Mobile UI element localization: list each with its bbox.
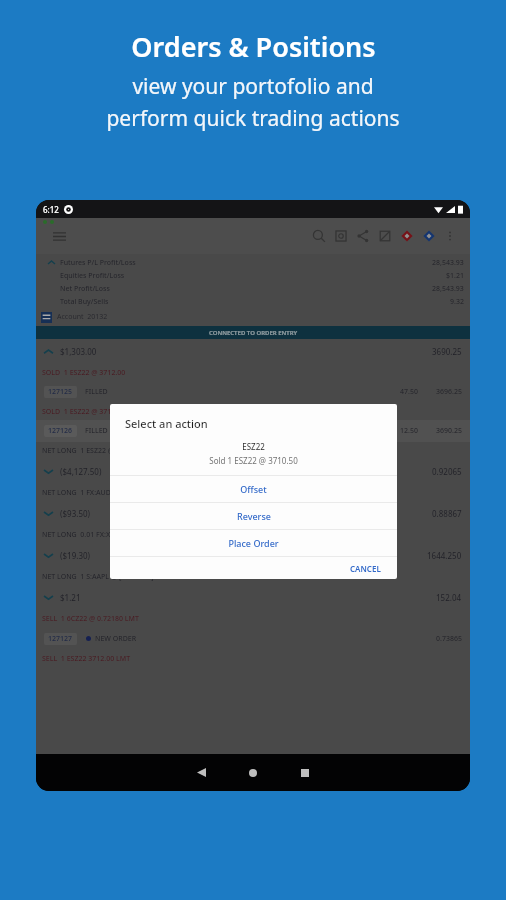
button[interactable]: NET LONG 1 ESZ22 @ [3698.2500]: [36, 442, 470, 459]
staticText: ($93.50): [60, 508, 91, 519]
button[interactable]: NET LONG 0.01 FX:XAUUSD.MO @ [1663.6700]: [36, 526, 470, 543]
staticText: CANCEL: [350, 563, 381, 573]
staticText: SELL 1 6CZ22 @ 0.72180 LMT: [42, 614, 139, 624]
staticText: 0.88867: [432, 508, 462, 519]
staticText: ($19.30): [60, 550, 91, 561]
staticText: 127126: [48, 426, 73, 436]
button[interactable]: NET LONG 1 S:AAPL @ [150.8300]: [36, 568, 470, 585]
button[interactable]: Share: [352, 225, 374, 247]
staticText: 1644.250: [427, 550, 462, 561]
staticText: 152.04: [436, 592, 462, 603]
staticText: 3696.25: [436, 387, 462, 397]
staticText: 6:12: [43, 204, 59, 215]
staticText: perform quick trading actions: [106, 104, 400, 133]
staticText: ($4,127.50): [60, 466, 102, 477]
staticText: SOLD 1 ESZ22 @ 3712.00: [42, 368, 126, 378]
button[interactable]: ($93.50): [36, 501, 470, 526]
staticText: Select an action: [125, 416, 208, 431]
staticText: 3690.25: [436, 426, 462, 436]
staticText: Equities Profit/Loss: [60, 271, 125, 281]
staticText: 47.50: [400, 387, 418, 397]
staticText: $1.21: [60, 592, 81, 603]
button[interactable]: Place Order: [110, 530, 397, 556]
button[interactable]: Search: [308, 225, 330, 247]
button[interactable]: Menu: [46, 223, 72, 249]
button[interactable]: Snapshot: [330, 225, 352, 247]
staticText: SELL 1 ESZ22 3712.00 LMT: [42, 654, 131, 664]
staticText: Net Profit/Loss: [60, 284, 110, 294]
button[interactable]: Recents: [279, 754, 331, 791]
staticText: Futures P/L Profit/Loss: [60, 258, 136, 268]
button[interactable]: Home: [227, 754, 279, 791]
button[interactable]: SELL 1 ESZ22 3712.00 LMT: [36, 650, 470, 667]
button[interactable]: $1,303.00: [36, 339, 470, 364]
staticText: 127125: [48, 387, 73, 397]
button[interactable]: Buy: [418, 225, 440, 247]
staticText: FILLED: [85, 387, 108, 397]
staticText: 127127: [48, 634, 73, 644]
staticText: NET LONG 1 S:AAPL @ [150.8300]: [42, 572, 154, 582]
button[interactable]: SOLD 1 ESZ22 @ 3710.50: [36, 403, 470, 420]
button[interactable]: SELL 1 6CZ22 @ 0.72180 LMT: [36, 610, 470, 627]
staticText: 3690.25: [432, 346, 462, 357]
staticText: FILLED: [85, 426, 108, 436]
staticText: Place Order: [228, 537, 279, 549]
button[interactable]: Offset: [110, 476, 397, 502]
button[interactable]: Reverse: [110, 503, 397, 529]
staticText: ESZ22: [110, 441, 397, 452]
staticText: Offset: [240, 483, 267, 495]
button[interactable]: ($4,127.50): [36, 459, 470, 484]
button[interactable]: Sell: [396, 225, 418, 247]
staticText: CONNECTED TO ORDER ENTRY: [209, 329, 298, 337]
button[interactable]: CANCEL: [334, 557, 397, 579]
button[interactable]: Refresh: [374, 225, 396, 247]
staticText: NET LONG 0.01 FX:XAUUSD.MO @ [1663.6700]: [42, 530, 197, 540]
staticText: Total Buy/Sells: [60, 297, 109, 307]
staticText: 0.73865: [436, 634, 462, 644]
staticText: 0.92065: [432, 466, 462, 477]
staticText: SOLD 1 ESZ22 @ 3710.50: [42, 407, 126, 417]
staticText: 9.32: [450, 297, 464, 307]
button[interactable]: $1.21: [36, 585, 470, 610]
staticText: NET LONG 1 ESZ22 @ [3698.2500]: [42, 446, 155, 456]
staticText: 28,543.93: [432, 284, 464, 294]
staticText: NEW ORDER: [95, 634, 137, 644]
button[interactable]: 127127: [36, 627, 470, 650]
button[interactable]: SOLD 1 ESZ22 @ 3712.00: [36, 364, 470, 381]
staticText: Sold 1 ESZ22 @ 3710.50: [110, 455, 397, 466]
staticText: Account 20132: [57, 312, 108, 322]
staticText: Reverse: [237, 510, 271, 522]
staticText: NET LONG 1 FX:AUDUSD @ [0.8800]: [42, 488, 162, 498]
button[interactable]: 127126: [36, 420, 470, 442]
button[interactable]: Back: [175, 754, 227, 791]
button[interactable]: 127125: [36, 381, 470, 403]
staticText: $1,303.00: [60, 346, 97, 357]
button[interactable]: ($19.30): [36, 543, 470, 568]
staticText: view your portofolio and: [132, 72, 374, 101]
staticText: 12.50: [400, 426, 418, 436]
staticText: 28,543.93: [432, 258, 464, 268]
staticText: $1.21: [446, 271, 464, 281]
staticText: Orders & Positions: [131, 28, 376, 65]
button[interactable]: NET LONG 1 FX:AUDUSD @ [0.8800]: [36, 484, 470, 501]
